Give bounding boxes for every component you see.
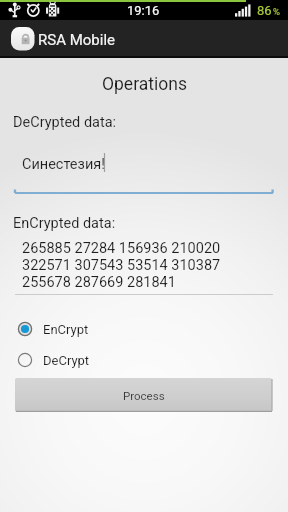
staticText: 255678 287669 281841 bbox=[22, 274, 176, 291]
button[interactable]: EnCrypt bbox=[0, 314, 288, 344]
staticText: 19:16 bbox=[127, 3, 160, 18]
staticText: 86 bbox=[257, 3, 272, 18]
staticText: RSA Mobile bbox=[38, 31, 115, 49]
button[interactable]: RSA Mobile app icon bbox=[0, 20, 288, 56]
staticText: EnCrypted data: bbox=[13, 215, 116, 232]
staticText: 265885 27284 156936 210020 bbox=[22, 240, 221, 257]
button[interactable]: Process bbox=[15, 378, 272, 412]
button[interactable]: DeCrypt bbox=[0, 345, 288, 375]
staticText: % bbox=[273, 6, 280, 17]
staticText: DeCrypt bbox=[43, 353, 90, 368]
other: RSA Mobile app icon bbox=[10, 25, 36, 51]
staticText: Синестезия! bbox=[22, 156, 105, 173]
staticText: EnCrypt bbox=[43, 322, 89, 337]
staticText: Operations bbox=[102, 74, 187, 95]
staticText: 322571 307543 53514 310387 bbox=[22, 257, 221, 274]
staticText: DeCrypted data: bbox=[13, 114, 117, 131]
staticText: Process bbox=[123, 389, 165, 402]
